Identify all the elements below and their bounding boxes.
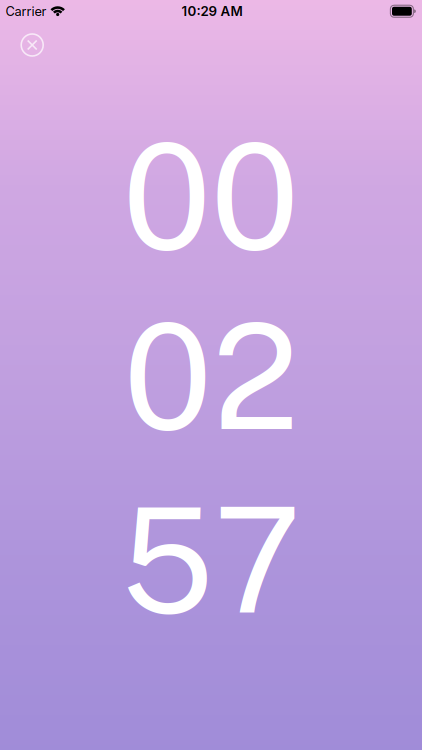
staticText: 10:29 AM	[181, 3, 242, 19]
staticText: 02	[123, 291, 298, 462]
button[interactable]: Close	[16, 29, 48, 61]
staticText: 57	[121, 475, 301, 645]
staticText: Carrier	[5, 3, 46, 19]
staticText: 00	[122, 111, 299, 282]
